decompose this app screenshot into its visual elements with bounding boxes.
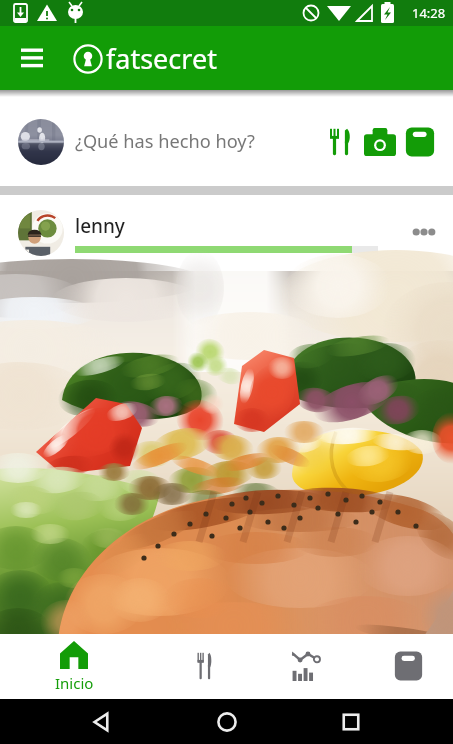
button[interactable]: ¿Qué has hecho hoy? [0, 97, 453, 186]
button[interactable]: Home [205, 700, 249, 744]
button[interactable]: More options [403, 212, 445, 254]
button[interactable]: Menu [12, 38, 52, 78]
button[interactable]: Weight [363, 634, 453, 699]
button[interactable]: Inicio [29, 634, 119, 699]
button[interactable]: Record weight [400, 122, 440, 162]
button[interactable]: Food diary [159, 634, 249, 699]
button[interactable]: Add food [320, 122, 360, 162]
staticText: lenny [75, 213, 125, 239]
staticText: fatsecret [106, 40, 217, 77]
button[interactable]: Reports [261, 634, 351, 699]
button[interactable]: lenny [0, 195, 453, 271]
button[interactable]: Recent apps [329, 700, 373, 744]
button[interactable]: Back [80, 700, 124, 744]
staticText: Inicio [55, 673, 94, 693]
staticText: ¿Qué has hecho hoy? [75, 129, 255, 154]
staticText: 14:28 [412, 4, 446, 22]
button[interactable]: Take photo [360, 122, 400, 162]
